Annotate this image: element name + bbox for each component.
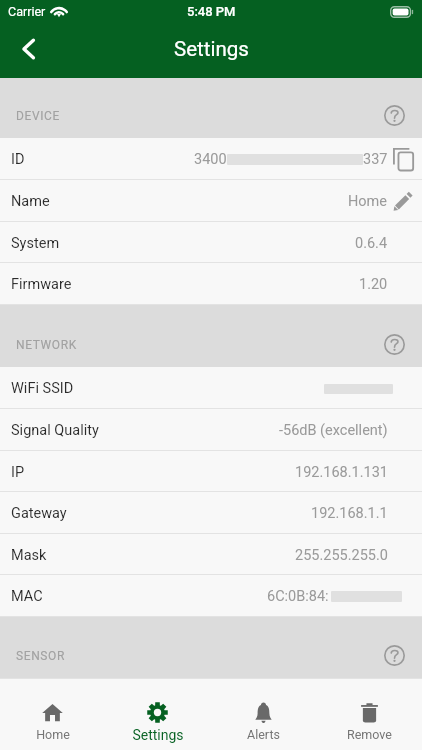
staticText: Name: [11, 193, 50, 210]
staticText: IP: [11, 464, 25, 481]
staticText: WiFi SSID: [11, 380, 74, 397]
button[interactable]: Edit: [389, 187, 417, 215]
staticText: Firmware: [11, 276, 72, 293]
button[interactable]: Help: [377, 327, 411, 361]
staticText: Home: [348, 193, 388, 210]
button[interactable]: Gateway: [0, 492, 422, 534]
staticText: Remove: [347, 727, 392, 742]
staticText: 337: [363, 151, 388, 168]
button[interactable]: Home: [0, 679, 105, 750]
staticText: Carrier: [8, 4, 46, 19]
button[interactable]: MAC: [0, 575, 422, 617]
staticText: 192.168.1.131: [295, 464, 388, 481]
staticText: Settings: [132, 727, 184, 743]
staticText: Mask: [11, 547, 47, 564]
staticText: Settings: [174, 37, 249, 61]
staticText: ID: [11, 151, 25, 168]
button[interactable]: Copy: [389, 145, 417, 173]
button[interactable]: Settings: [105, 679, 210, 750]
staticText: -56dB (excellent): [279, 422, 388, 439]
button[interactable]: Mask: [0, 534, 422, 575]
staticText: 192.168.1.1: [311, 505, 388, 522]
staticText: MAC: [11, 588, 43, 605]
button[interactable]: Back: [7, 27, 51, 71]
button[interactable]: WiFi SSID: [0, 367, 422, 409]
staticText: DEVICE: [16, 109, 60, 123]
staticText: 6C:0B:84:: [267, 588, 329, 605]
staticText: System: [11, 235, 60, 252]
staticText: Gateway: [11, 505, 67, 522]
button[interactable]: Alerts: [210, 679, 316, 750]
staticText: 3400: [194, 151, 227, 168]
button[interactable]: Name: [0, 180, 422, 222]
staticText: SENSOR: [16, 649, 65, 663]
staticText: Home: [36, 727, 70, 742]
button[interactable]: ID: [0, 138, 422, 180]
button[interactable]: Help: [377, 98, 411, 132]
button[interactable]: IP: [0, 451, 422, 492]
button[interactable]: Remove: [316, 679, 422, 750]
staticText: 255.255.255.0: [295, 547, 388, 564]
staticText: 1.20: [359, 276, 388, 293]
staticText: NETWORK: [16, 338, 77, 352]
staticText: 0.6.4: [355, 235, 388, 252]
button[interactable]: Help: [377, 638, 411, 672]
staticText: 5:48 PM: [187, 4, 236, 19]
button[interactable]: Firmware: [0, 263, 422, 305]
button[interactable]: System: [0, 222, 422, 263]
staticText: Signal Quality: [11, 422, 99, 439]
button[interactable]: Signal Quality: [0, 409, 422, 451]
staticText: Alerts: [247, 727, 280, 742]
